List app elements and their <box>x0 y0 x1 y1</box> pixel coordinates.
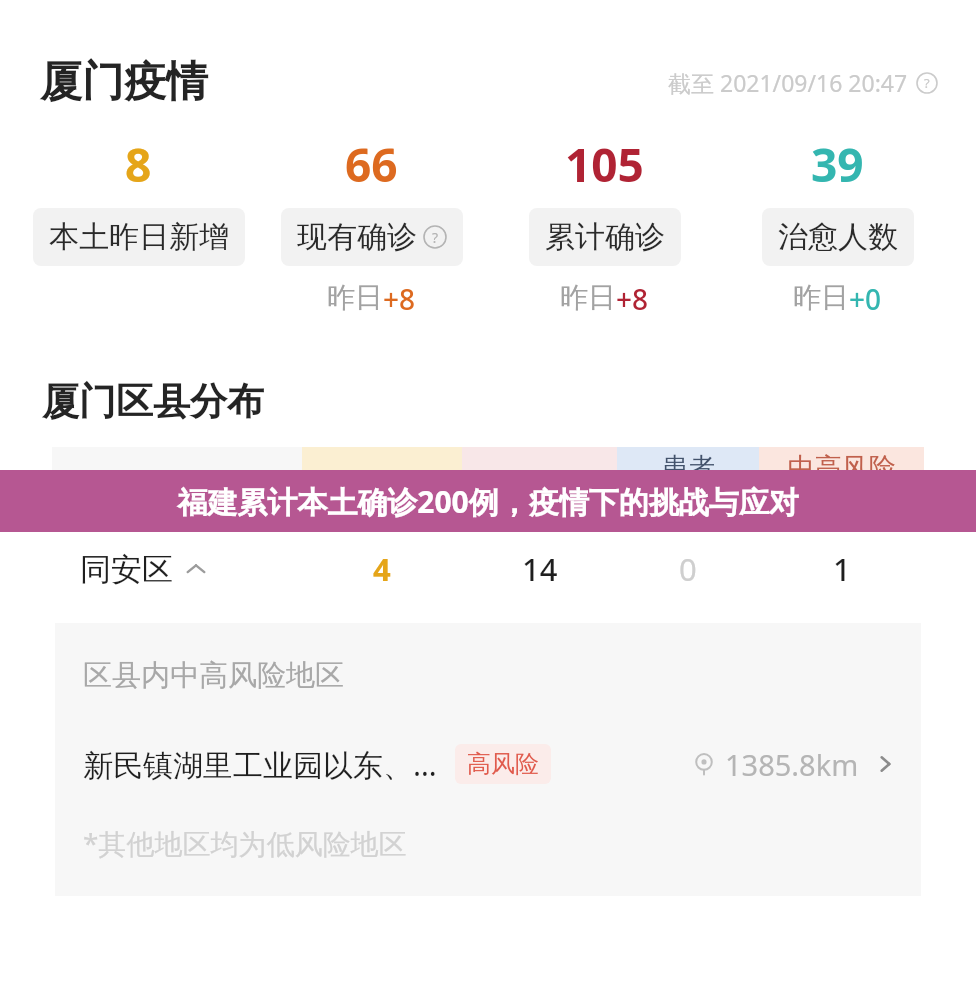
staticText: 福建累计本土确诊200例，疫情下的挑战与应对 <box>177 481 799 522</box>
other: 收起 <box>183 557 209 583</box>
staticText: 累计 <box>513 469 567 503</box>
button[interactable]: 累计确诊 <box>529 208 681 266</box>
staticText: 本土昨日新增 <box>49 218 229 256</box>
staticText: 累计确诊 <box>545 218 665 256</box>
staticText: 1385.8km <box>725 745 859 784</box>
staticText: ? <box>924 74 930 92</box>
staticText: 14 <box>522 548 558 590</box>
staticText: 同安区 <box>80 550 173 589</box>
staticText: +8 <box>616 280 649 318</box>
staticText: ? <box>432 228 439 247</box>
staticText: 厦门疫情 <box>40 56 208 109</box>
button[interactable]: 截至 2021/09/16 20:47 <box>664 63 942 102</box>
staticText: 区县 <box>80 469 134 503</box>
staticText: 66 <box>345 133 398 196</box>
button[interactable]: 新民镇湖里工业园以东、… <box>83 728 897 800</box>
staticText: 4 <box>373 548 391 590</box>
staticText: 1 <box>833 548 851 590</box>
staticText: 昨日 <box>560 280 616 315</box>
staticText: 8 <box>125 133 152 196</box>
button[interactable]: 新增 <box>302 447 462 525</box>
staticText: +0 <box>849 280 882 318</box>
button[interactable]: 同安区 <box>52 525 924 613</box>
staticText: 新增 <box>355 469 409 503</box>
staticText: 新民镇湖里工业园以东、… <box>83 744 437 785</box>
staticText: +8 <box>383 280 416 318</box>
staticText: 中高风险 地区 <box>788 451 896 521</box>
staticText: 厦门区县分布 <box>42 378 264 425</box>
staticText: 39 <box>811 133 864 196</box>
button[interactable]: 患者 轨迹点 <box>617 447 759 525</box>
staticText: 区县内中高风险地区 <box>83 657 344 694</box>
staticText: 截至 2021/09/16 20:47 <box>668 67 908 98</box>
staticText: 昨日 <box>793 280 849 315</box>
staticText: 现有确诊 <box>297 218 417 256</box>
button[interactable]: 治愈人数 <box>762 208 914 266</box>
button[interactable]: 本土昨日新增 <box>33 208 245 266</box>
staticText: 患者 轨迹点 <box>648 451 729 521</box>
staticText: 105 <box>565 133 644 196</box>
staticText: *其他地区均为低风险地区 <box>83 824 407 862</box>
button[interactable]: 中高风险 地区 <box>759 447 924 525</box>
button[interactable]: 现有确诊 <box>281 208 463 266</box>
staticText: 0 <box>679 548 697 590</box>
staticText: 治愈人数 <box>778 218 898 256</box>
button[interactable]: 区县 <box>52 447 302 525</box>
staticText: 高风险 <box>467 749 539 779</box>
staticText: 昨日 <box>327 280 383 315</box>
button[interactable]: 累计 <box>462 447 617 525</box>
